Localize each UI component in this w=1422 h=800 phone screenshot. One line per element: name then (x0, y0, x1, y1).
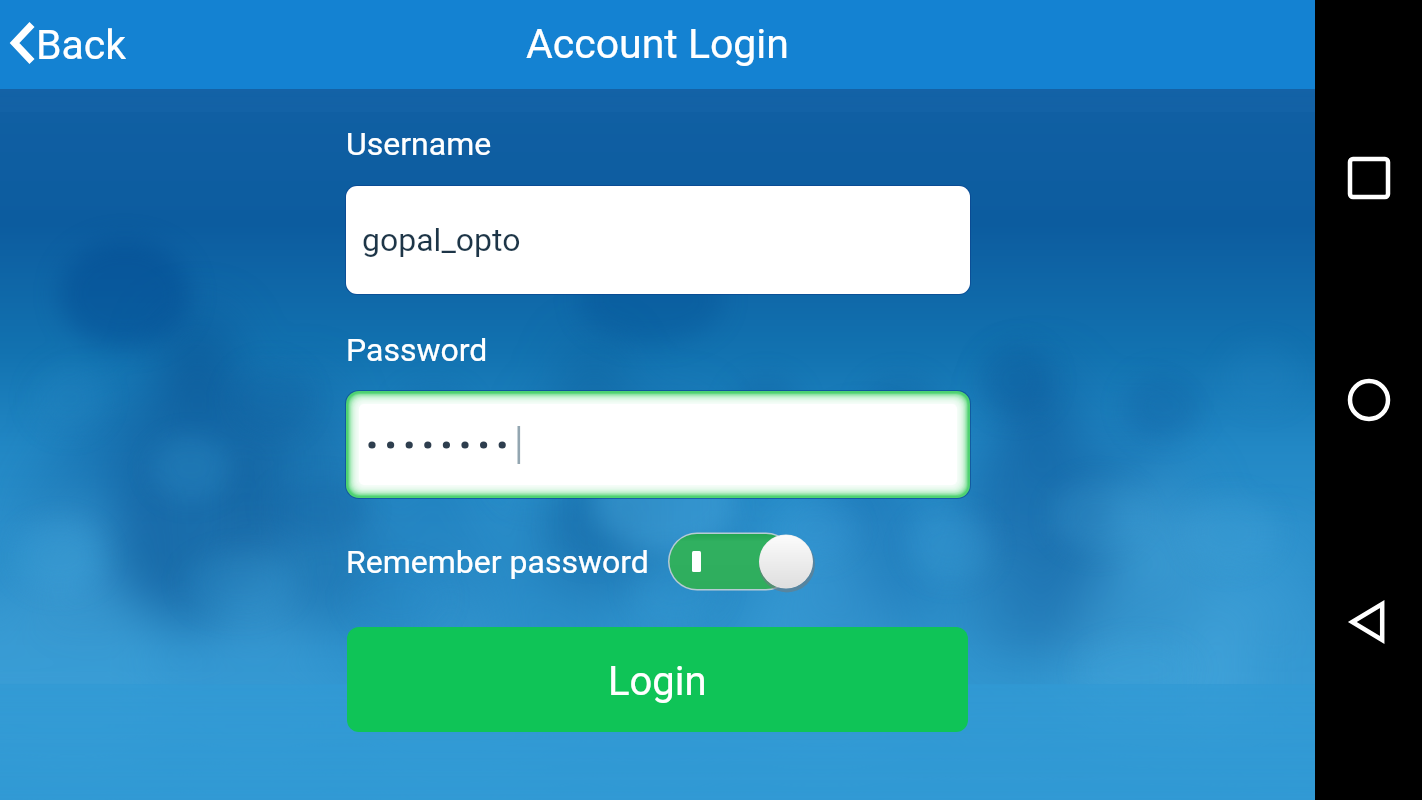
staticText: gopal_opto (362, 221, 521, 259)
staticText: Account Login (526, 20, 789, 68)
button[interactable]: Password (346, 391, 970, 498)
staticText: Password (346, 331, 488, 369)
button[interactable]: Home (1329, 360, 1409, 440)
button[interactable]: Login (347, 627, 968, 732)
staticText: Remember password (346, 543, 649, 581)
staticText: Username (346, 125, 492, 163)
button[interactable]: Username (346, 186, 970, 294)
staticText: Login (608, 658, 707, 705)
button[interactable]: Back (0, 0, 143, 89)
staticText: Back (36, 21, 127, 69)
button[interactable]: Remember password (669, 533, 814, 590)
button[interactable]: Back (1329, 582, 1409, 662)
button[interactable]: Recents (1329, 138, 1409, 218)
